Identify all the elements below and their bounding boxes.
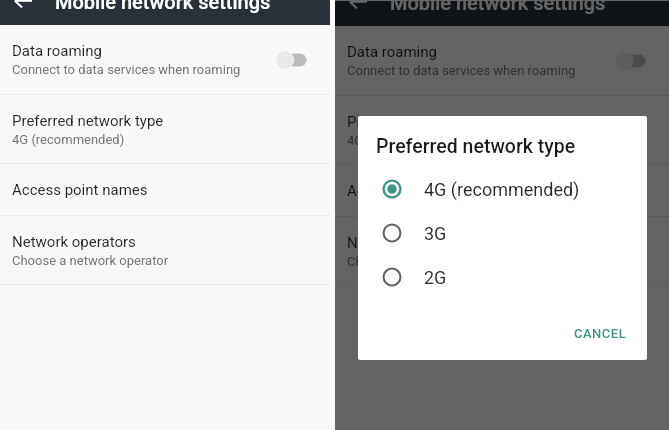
button[interactable]: Preferred network type bbox=[0, 95, 330, 163]
staticText: Data roaming bbox=[347, 43, 437, 61]
button[interactable]: Access point names bbox=[0, 164, 330, 215]
button[interactable]: Data roaming bbox=[335, 26, 669, 95]
button[interactable]: Back bbox=[0, 0, 44, 25]
button[interactable]: Preferred network type bbox=[335, 96, 669, 164]
button[interactable]: Back bbox=[335, 1, 379, 26]
button[interactable]: Data roaming bbox=[0, 25, 330, 94]
staticText: Choose a network operator bbox=[12, 253, 169, 268]
button[interactable]: 3G bbox=[358, 211, 647, 255]
staticText: 4G (recommended) bbox=[424, 179, 580, 200]
staticText: 4G (recommended) bbox=[12, 132, 125, 147]
staticText: Mobile network settings bbox=[55, 0, 271, 13]
button[interactable]: 2G bbox=[358, 255, 647, 299]
staticText: Preferred network type bbox=[347, 113, 499, 131]
staticText: Preferred network type bbox=[12, 112, 164, 130]
staticText: Network operators bbox=[347, 234, 471, 252]
staticText: Connect to data services when roaming bbox=[12, 62, 241, 77]
staticText: 2G bbox=[424, 267, 447, 288]
button[interactable]: Access point names bbox=[335, 165, 669, 216]
staticText: 3G bbox=[424, 223, 447, 244]
staticText: 4G (recommended) bbox=[347, 133, 460, 148]
button[interactable]: Data roaming toggle bbox=[275, 43, 317, 77]
button[interactable]: Network operators bbox=[335, 217, 669, 285]
staticText: Data roaming bbox=[12, 42, 102, 60]
button[interactable]: 4G (recommended) bbox=[358, 167, 647, 211]
staticText: Choose a network operator bbox=[347, 254, 504, 269]
button[interactable]: Network operators bbox=[0, 216, 330, 284]
button[interactable]: CANCEL bbox=[566, 320, 635, 347]
staticText: Mobile network settings bbox=[390, 0, 606, 14]
staticText: Preferred network type bbox=[376, 135, 576, 158]
staticText: Access point names bbox=[347, 182, 483, 200]
staticText: Network operators bbox=[12, 233, 136, 251]
staticText: Access point names bbox=[12, 181, 148, 199]
staticText: Connect to data services when roaming bbox=[347, 63, 576, 78]
button[interactable]: Data roaming toggle bbox=[614, 44, 656, 78]
staticText: CANCEL bbox=[574, 326, 627, 341]
